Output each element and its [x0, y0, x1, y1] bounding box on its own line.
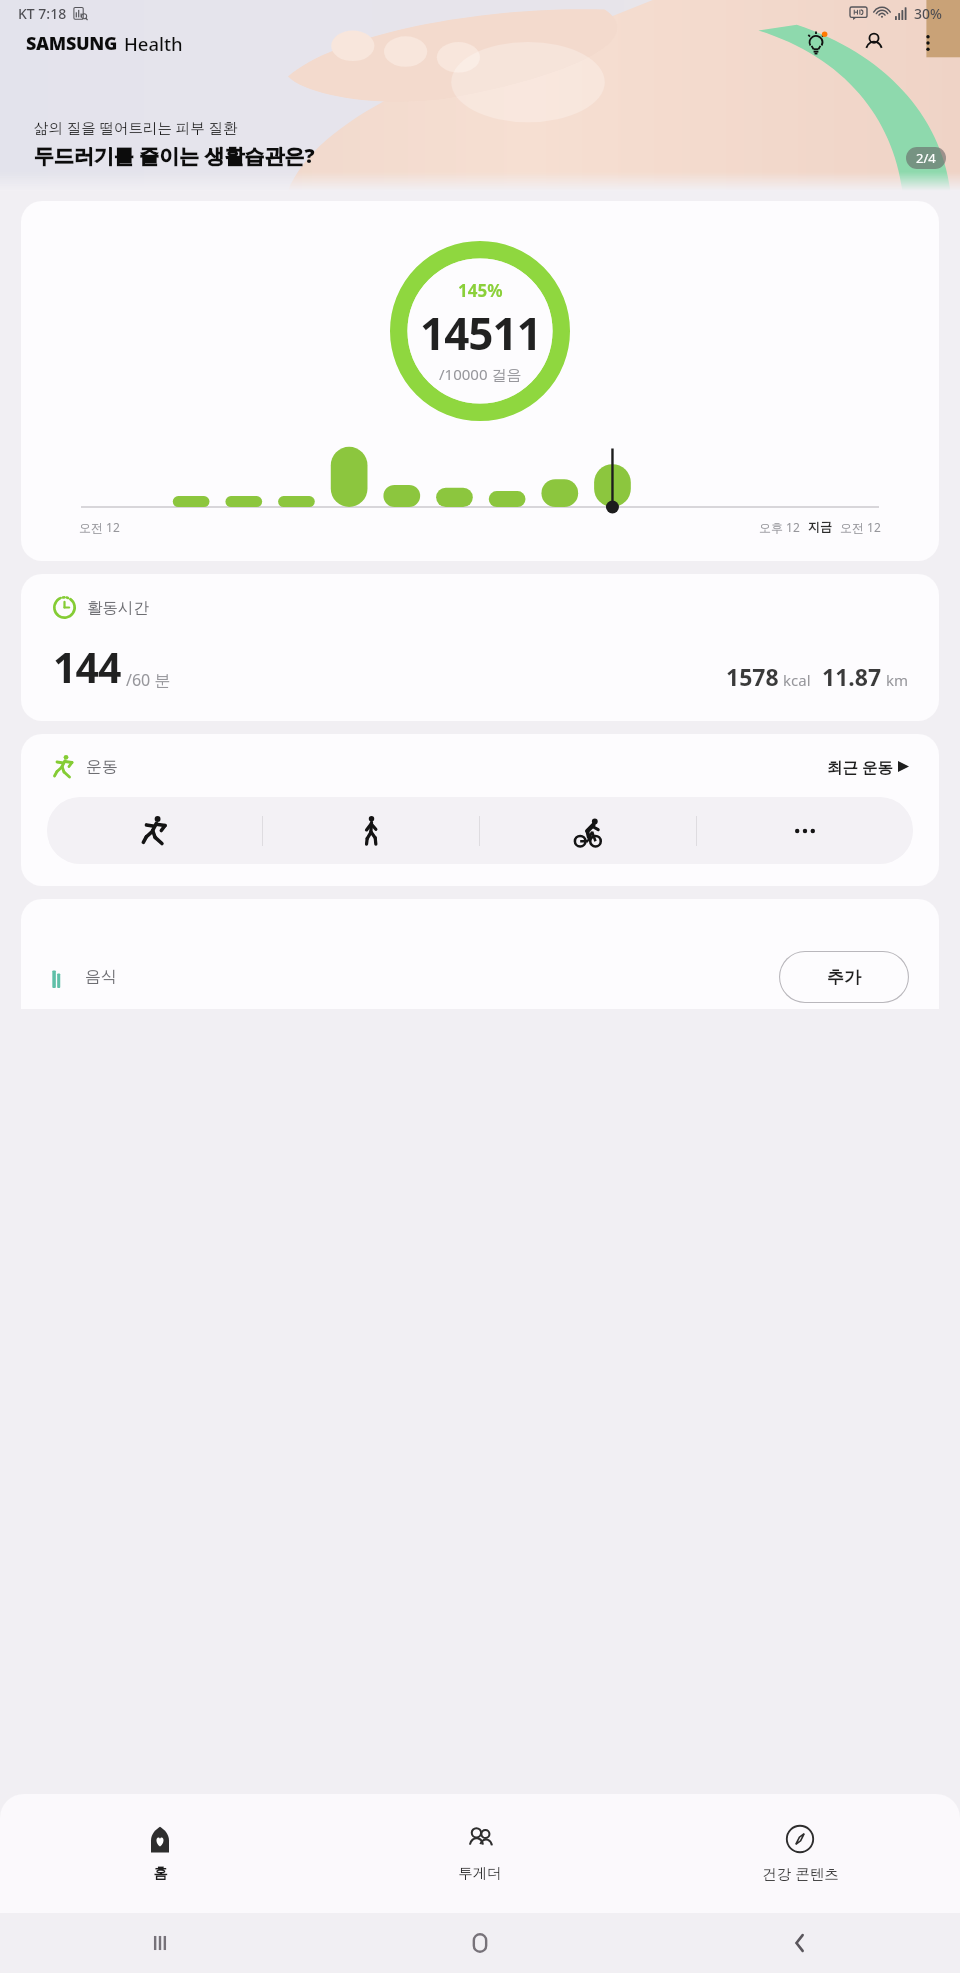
staticText: /10000 걸음 [439, 364, 522, 384]
button[interactable]: Tips [796, 23, 836, 63]
button[interactable]: Cycling [480, 797, 696, 864]
button[interactable]: 2/4 [916, 149, 936, 167]
staticText: Health [124, 31, 183, 56]
staticText: SAMSUNG [26, 31, 118, 56]
staticText: 30% [914, 4, 942, 23]
staticText: kcal [783, 670, 811, 690]
staticText: 투게더 [458, 1864, 502, 1882]
staticText: 두드러기를 줄이는 생활습관은? [34, 142, 315, 169]
staticText: 음식 [85, 967, 117, 987]
staticText: 홈 [153, 1864, 168, 1882]
staticText: 오전 12 [79, 519, 120, 535]
staticText: 11.87 [822, 661, 882, 692]
button[interactable]: 활동시간 [21, 574, 939, 721]
staticText: 지금 [808, 519, 832, 534]
button[interactable]: 건강 콘텐츠 [640, 1794, 960, 1913]
button[interactable]: More options [908, 23, 948, 63]
button[interactable]: 최근 운동 [827, 756, 909, 777]
button[interactable]: Profile [854, 23, 894, 63]
button[interactable]: Running [47, 797, 262, 864]
staticText: 추가 [827, 967, 861, 988]
button[interactable]: More exercises [697, 797, 913, 864]
button[interactable]: 음식 [21, 899, 939, 1009]
staticText: 2/4 [916, 149, 936, 167]
staticText: 1578 [726, 661, 779, 692]
staticText: km [886, 670, 909, 690]
button[interactable]: 추가 [779, 951, 909, 1003]
button[interactable]: Recents [0, 1913, 320, 1973]
staticText: 삶의 질을 떨어트리는 피부 질환 [34, 117, 238, 137]
button[interactable]: 투게더 [320, 1794, 640, 1913]
staticText: KT 7:18 [18, 4, 67, 23]
staticText: 운동 [86, 757, 118, 777]
staticText: 최근 운동 [827, 756, 894, 777]
button[interactable]: 홈 [0, 1794, 320, 1913]
staticText: /60 분 [126, 669, 171, 691]
button[interactable]: Back [640, 1913, 960, 1973]
staticText: 활동시간 [87, 598, 149, 618]
staticText: 오전 12 [840, 519, 881, 535]
staticText: 오후 12 [759, 519, 800, 535]
staticText: 145% [458, 279, 503, 302]
staticText: 14511 [420, 303, 541, 363]
button[interactable]: 145% [21, 201, 939, 561]
button[interactable]: Home [320, 1913, 640, 1973]
staticText: 144 [53, 639, 121, 695]
button[interactable]: Walking [263, 797, 479, 864]
staticText: 건강 콘텐츠 [762, 1863, 839, 1883]
